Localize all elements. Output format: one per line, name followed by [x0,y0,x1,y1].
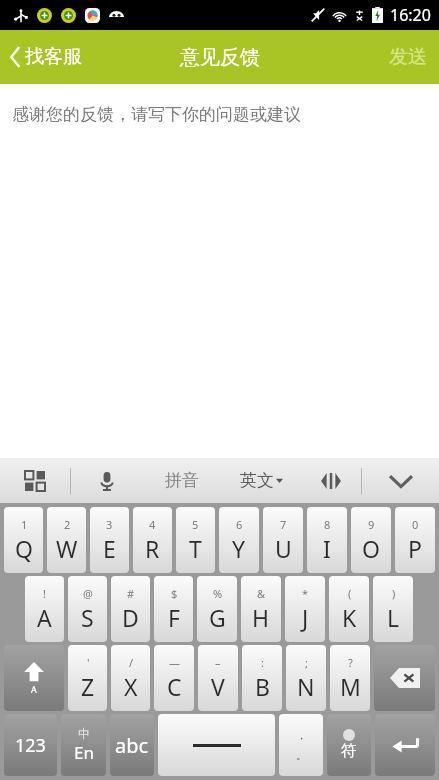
button[interactable]: ， [279,714,323,776]
button[interactable]: Backspace [374,645,435,711]
button[interactable]: @ [68,576,107,642]
button[interactable]: ' [68,645,107,711]
staticText: & [257,586,266,601]
staticText: 1 [21,517,28,532]
staticText: 7 [280,517,287,532]
button[interactable]: 发送 [377,35,439,79]
button[interactable]: Voice input [71,458,143,503]
button[interactable]: 9 [351,507,391,573]
staticText: 16:20 [390,4,431,26]
button[interactable]: Shift [4,645,64,711]
staticText: ! [43,586,46,601]
staticText: B [255,671,270,702]
staticText: M [340,671,361,702]
button[interactable]: Enter [375,714,435,776]
button[interactable]: abc [110,714,154,776]
button[interactable]: # [111,576,150,642]
button[interactable]: — [154,645,194,711]
staticText: 。 [296,748,307,762]
button[interactable]: 3 [90,507,129,573]
button[interactable]: 0 [395,507,435,573]
staticText: 感谢您的反馈，请写下你的问题或建议 [12,104,301,125]
staticText: * [302,586,309,601]
staticText: — [169,655,180,670]
button[interactable]: 拼音 [143,458,221,503]
staticText: 5 [192,517,199,532]
staticText: E [103,533,116,564]
button[interactable]: * [285,576,325,642]
staticText: ( [348,586,352,601]
staticText: 3 [106,517,113,532]
staticText: 0 [412,517,419,532]
button[interactable]: / [111,645,150,711]
staticText: % [213,586,223,601]
button[interactable]: 英文 [221,458,301,503]
staticText: D [122,602,139,633]
button[interactable]: : [242,645,282,711]
button[interactable]: Symbols [327,714,371,776]
staticText: 2 [64,517,71,532]
staticText: A [31,683,37,695]
button[interactable]: Move cursor [301,458,361,503]
staticText: # [127,586,135,601]
staticText: – [215,655,221,670]
button[interactable]: 4 [133,507,172,573]
staticText: 英文 [240,470,274,491]
staticText: I [323,533,331,564]
button[interactable]: & [241,576,281,642]
staticText: 符 [341,741,357,761]
staticText: Q [15,533,33,564]
staticText: abc [115,732,149,759]
staticText: ， [296,728,307,742]
button[interactable]: ) [373,576,413,642]
staticText: ; [305,655,308,670]
staticText: T [189,533,202,564]
staticText: ) [392,586,396,601]
staticText: 4 [149,517,156,532]
staticText: Y [232,533,246,564]
button[interactable]: ? [330,645,370,711]
staticText: C [167,671,182,702]
button[interactable]: 2 [47,507,86,573]
button[interactable]: Space [158,714,275,776]
staticText: A [37,602,52,633]
staticText: 中 [78,726,90,741]
staticText: W [56,533,78,564]
staticText: 6 [236,517,243,532]
button[interactable]: 找客服 [0,37,94,77]
button[interactable]: 5 [176,507,215,573]
button[interactable]: Numbers [4,714,57,776]
staticText: V [211,671,225,702]
staticText: $ [171,586,178,601]
staticText: Z [81,671,95,702]
button[interactable]: % [197,576,237,642]
button[interactable]: $ [154,576,193,642]
button[interactable]: 6 [219,507,259,573]
staticText: En [74,741,94,764]
staticText: O [362,533,380,564]
staticText: 发送 [389,45,427,69]
staticText: X [124,671,138,702]
button[interactable]: ! [25,576,64,642]
button[interactable]: – [198,645,238,711]
button[interactable]: ( [329,576,369,642]
staticText: 123 [15,733,46,758]
button[interactable]: 7 [263,507,303,573]
staticText: @ [83,586,93,601]
staticText: F [168,602,180,633]
button[interactable]: ; [286,645,326,711]
staticText: H [252,602,270,633]
staticText: ' [87,655,90,670]
button[interactable]: Keyboard layouts [0,458,70,503]
button[interactable]: Language [61,714,106,776]
staticText: K [342,602,357,633]
staticText: R [145,533,160,564]
button[interactable]: 8 [307,507,347,573]
button[interactable]: 1 [4,507,43,573]
button[interactable]: Hide keyboard [362,458,439,503]
staticText: J [302,602,309,633]
staticText: : [261,655,264,670]
staticText: 拼音 [165,470,199,491]
staticText: U [275,533,292,564]
staticText: P [408,533,422,564]
